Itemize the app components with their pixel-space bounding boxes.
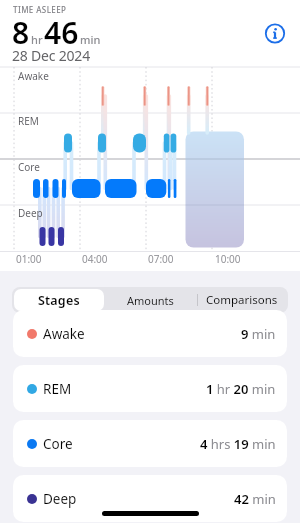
staticText: REM [43,380,72,398]
staticText: hr [31,32,43,47]
button[interactable]: Awake [13,310,287,357]
button[interactable]: Core [13,420,287,467]
staticText: 28 Dec 2024 [12,46,90,65]
button[interactable]: Deep [13,475,287,522]
staticText: 9 min [241,325,276,343]
staticText: Awake [43,325,85,343]
staticText: 4 hrs 19 min [200,435,276,453]
button[interactable]: Stages [14,289,104,311]
staticText: 42 min [234,490,276,508]
staticText: Core [43,435,73,453]
staticText: Core [18,160,40,174]
button[interactable]: REM [13,365,287,412]
staticText: 01:00 [16,252,42,266]
staticText: REM [18,114,39,128]
staticText: 10:00 [215,252,241,266]
button[interactable]: Amounts [104,287,196,313]
button[interactable]: Comparisons [196,287,288,313]
staticText: Comparisons [206,292,278,308]
button[interactable] [262,21,288,47]
staticText: min [80,32,101,47]
staticText: 1 hr 20 min [206,380,276,398]
staticText: Amounts [127,293,174,308]
staticText: Deep [43,490,77,508]
staticText: 46 [44,12,79,53]
staticText: TIME ASLEEP [13,4,67,15]
staticText: Awake [18,69,49,83]
staticText: Stages [38,292,80,309]
staticText: 8 [12,12,30,53]
staticText: 07:00 [148,252,174,266]
staticText: Deep [18,206,43,220]
staticText: 04:00 [82,252,108,266]
